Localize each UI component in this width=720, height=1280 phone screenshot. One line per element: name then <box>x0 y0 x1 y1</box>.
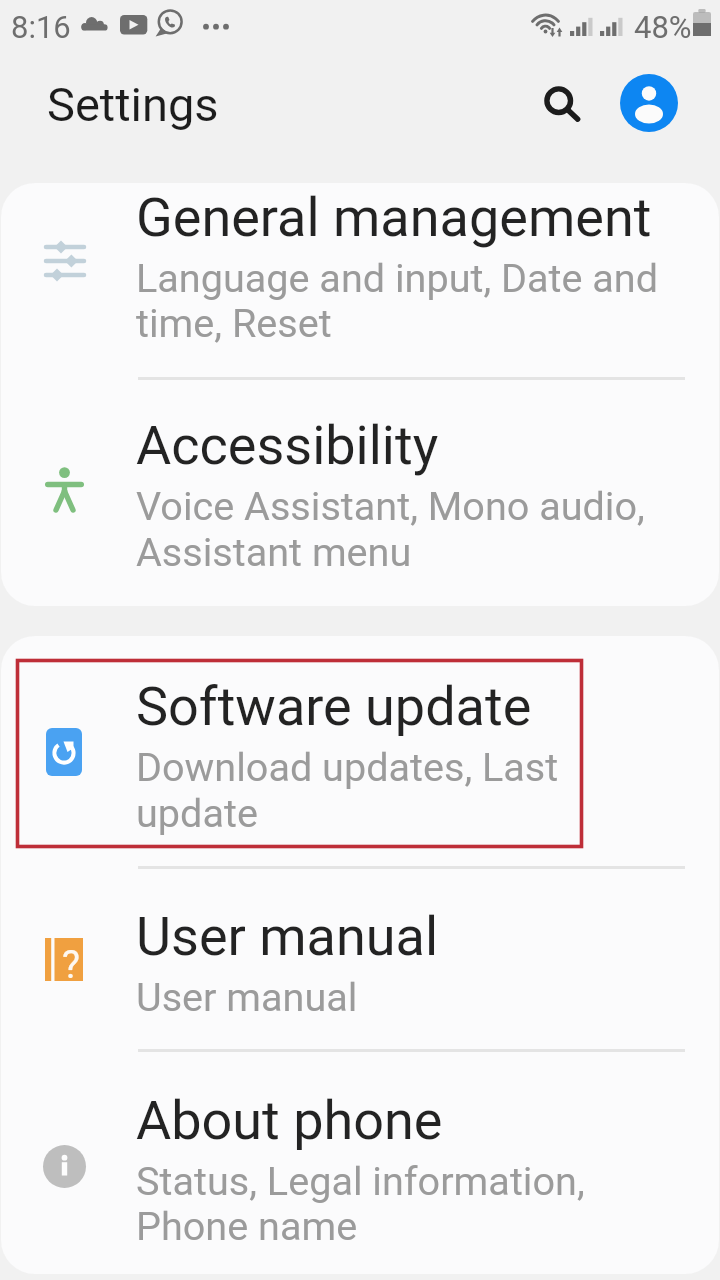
staticText: 8:16 <box>11 9 71 45</box>
button[interactable]: Search <box>528 69 600 141</box>
staticText: Accessibility <box>136 414 439 477</box>
button[interactable] <box>1 1048 719 1274</box>
staticText: Settings <box>47 77 219 132</box>
staticText: ? <box>62 943 80 986</box>
staticText: Phone name <box>136 1203 358 1249</box>
button[interactable]: Account <box>620 74 678 132</box>
staticText: About phone <box>136 1089 443 1152</box>
staticText: User manual <box>136 974 358 1020</box>
button[interactable] <box>1 376 719 606</box>
button[interactable] <box>1 866 719 1048</box>
staticText: Assistant menu <box>136 529 412 575</box>
button[interactable] <box>1 183 719 376</box>
staticText: Language and input, Date and <box>136 255 659 301</box>
staticText: 48% <box>634 9 692 45</box>
staticText: time, Reset <box>136 300 332 346</box>
staticText: update <box>136 790 258 836</box>
staticText: Voice Assistant, Mono audio, <box>136 483 645 529</box>
button[interactable] <box>1 636 719 866</box>
staticText: Download updates, Last <box>136 744 559 790</box>
staticText: General management <box>136 186 652 249</box>
staticText: User manual <box>136 905 439 968</box>
staticText: Status, Legal information, <box>136 1158 585 1204</box>
staticText: Software update <box>136 675 532 738</box>
